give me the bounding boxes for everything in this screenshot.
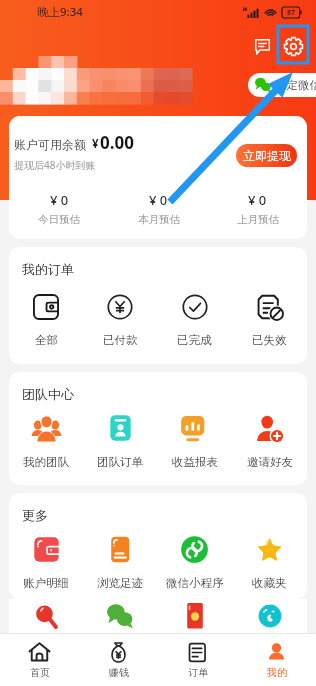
button[interactable]: 已失效 (232, 294, 307, 347)
staticText: 已付款 (103, 333, 138, 347)
button[interactable]: 我的 (237, 634, 316, 686)
button[interactable]: 已付款 (83, 294, 157, 347)
button[interactable]: 首页 (0, 634, 79, 686)
button[interactable]: 团队订单 (83, 414, 157, 469)
button[interactable]: 订单 (158, 634, 237, 686)
staticText: 上月预估 (237, 213, 279, 226)
staticText: 已完成 (177, 333, 212, 347)
staticText: 首页 (30, 666, 50, 679)
staticText: 我的订单 (22, 261, 74, 277)
button[interactable]: 立即提现 (236, 144, 297, 167)
button[interactable]: Weibo (9, 603, 83, 633)
staticText: 团队中心 (22, 386, 74, 402)
button[interactable]: QQ (232, 603, 307, 633)
button[interactable]: 邀请好友 (232, 414, 307, 469)
staticText: 立即提现 (243, 148, 291, 163)
staticText: ¥ 0 (50, 191, 69, 209)
staticText: 团队订单 (97, 455, 143, 469)
button[interactable]: 绑定微信 (248, 73, 316, 97)
staticText: 订单 (188, 666, 208, 679)
staticText: 今日预估 (38, 213, 80, 226)
staticText: 0.00 (100, 131, 134, 154)
staticText: 晚上9:34 (37, 4, 83, 20)
staticText: 我的 (267, 666, 287, 679)
staticText: 邀请好友 (247, 455, 293, 469)
staticText: 绑定微信 (275, 78, 316, 92)
button[interactable]: WeChat (83, 603, 157, 633)
button[interactable]: Settings (278, 31, 308, 61)
button[interactable]: 我的团队 (9, 414, 83, 469)
button[interactable]: 收藏夹 (232, 535, 307, 590)
staticText: 微信小程序 (166, 576, 224, 590)
button[interactable]: 已完成 (157, 294, 232, 347)
staticText: 我的团队 (23, 455, 69, 469)
button[interactable]: 浏览足迹 (83, 535, 157, 590)
button[interactable]: 微信小程序 (157, 535, 232, 590)
button[interactable]: ¥ 0 (109, 191, 208, 226)
staticText: 赚钱 (109, 666, 129, 679)
staticText: ¥ 0 (248, 191, 267, 209)
button[interactable]: ¥ 0 (9, 191, 109, 226)
staticText: 收益报表 (172, 455, 218, 469)
staticText: 账户可用余额 (14, 137, 86, 152)
staticText: ¥ (92, 136, 99, 152)
staticText: 收藏夹 (252, 576, 287, 590)
staticText: 提现后48小时到账 (14, 158, 96, 172)
staticText: 全部 (35, 333, 58, 347)
staticText: 本月预估 (138, 213, 180, 226)
button[interactable]: ¥ 0 (208, 191, 307, 226)
button[interactable]: 账户明细 (9, 535, 83, 590)
staticText: 更多 (22, 507, 48, 523)
staticText: 浏览足迹 (97, 576, 143, 590)
button[interactable]: Red packet (157, 603, 232, 633)
button[interactable]: 赚钱 (79, 634, 158, 686)
staticText: 87 (287, 8, 296, 18)
button[interactable]: 全部 (9, 294, 83, 347)
staticText: ¥ 0 (149, 191, 168, 209)
button[interactable]: Messages (247, 31, 277, 61)
staticText: 账户明细 (23, 576, 69, 590)
button[interactable]: 收益报表 (157, 414, 232, 469)
staticText: 已失效 (252, 333, 287, 347)
